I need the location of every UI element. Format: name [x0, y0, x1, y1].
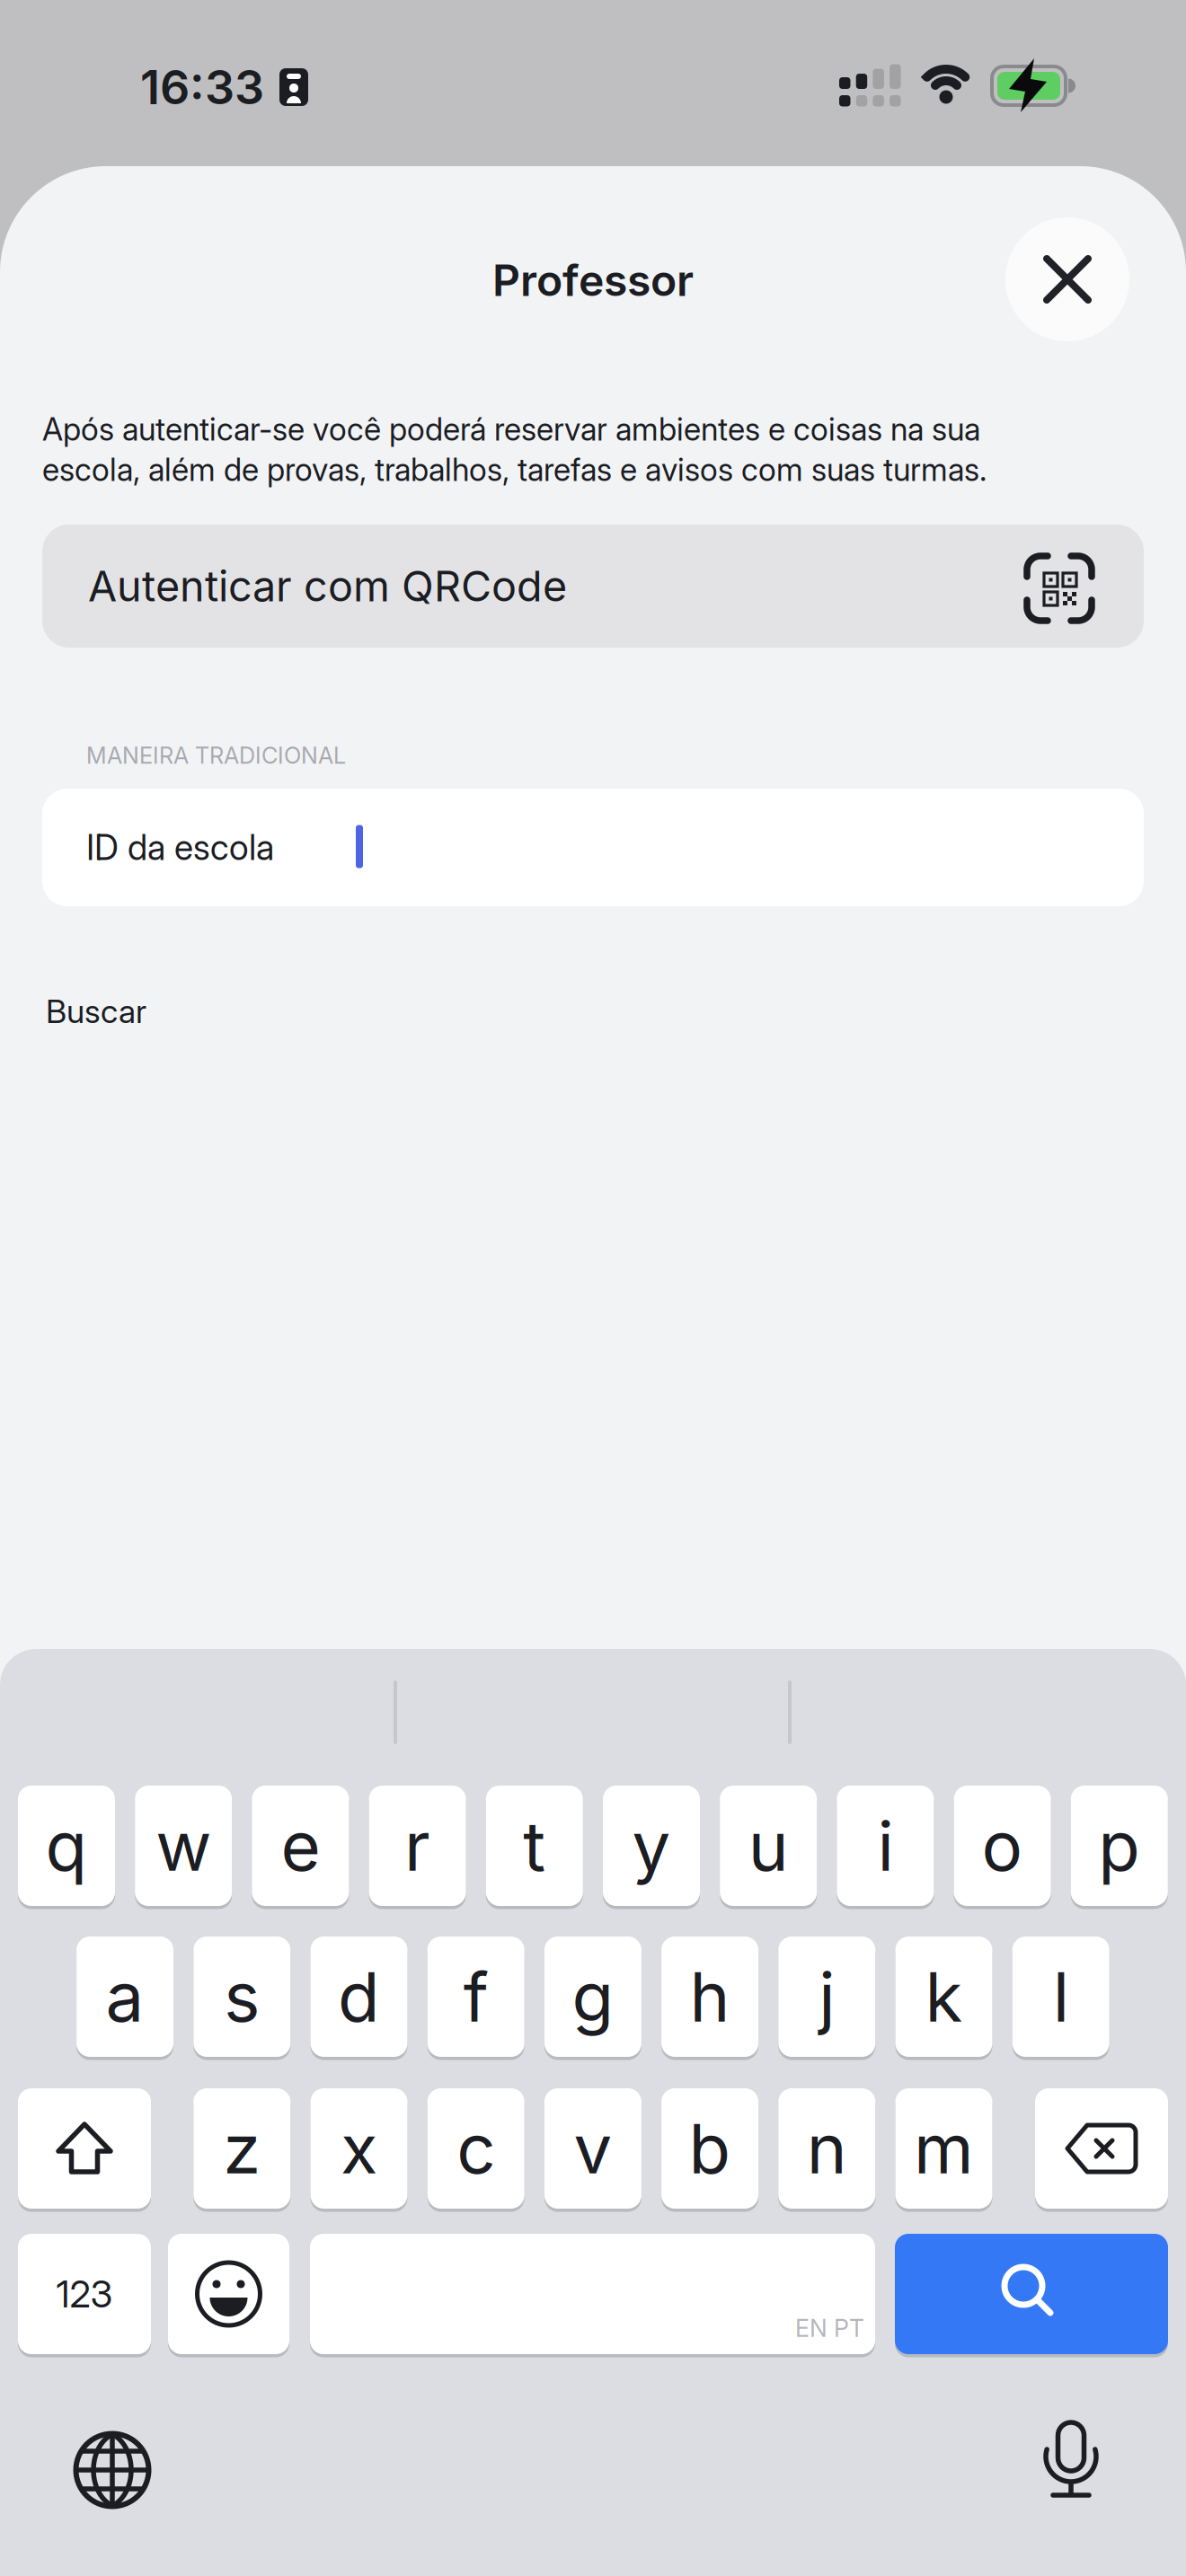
staticText: n — [807, 2108, 847, 2189]
button[interactable]: h — [661, 1936, 758, 2057]
button[interactable]: p — [1071, 1786, 1168, 1906]
button[interactable]: j — [778, 1936, 875, 2057]
button[interactable]: i — [837, 1786, 934, 1906]
button[interactable]: 123 — [18, 2234, 151, 2354]
button[interactable]: c — [427, 2088, 524, 2209]
button[interactable]: t — [486, 1786, 583, 1906]
button[interactable]: e — [252, 1786, 349, 1906]
staticText: q — [45, 1806, 88, 1886]
staticText: Autenticar com QRCode — [88, 561, 567, 611]
staticText: o — [982, 1806, 1023, 1886]
staticText: EN PT — [795, 2314, 864, 2342]
staticText: x — [341, 2108, 377, 2189]
button[interactable]: s — [193, 1936, 290, 2057]
button[interactable]: Próximo teclado — [67, 2425, 157, 2515]
staticText: p — [1098, 1806, 1140, 1886]
staticText: r — [404, 1806, 430, 1886]
staticText: v — [574, 2108, 612, 2189]
staticText: MANEIRA TRADICIONAL — [86, 742, 346, 769]
button[interactable]: q — [18, 1786, 115, 1906]
staticText: m — [914, 2108, 974, 2189]
button[interactable]: Espaço — [310, 2234, 875, 2354]
button[interactable]: x — [310, 2088, 407, 2209]
staticText: b — [689, 2108, 731, 2189]
button[interactable]: ID da escola — [42, 789, 1144, 906]
button[interactable]: m — [895, 2088, 992, 2209]
button[interactable]: k — [895, 1936, 992, 2057]
staticText: 123 — [56, 2272, 113, 2316]
button[interactable]: n — [778, 2088, 875, 2209]
staticText: a — [106, 1956, 144, 2037]
button[interactable]: Shift — [18, 2088, 151, 2209]
staticText: g — [572, 1956, 614, 2037]
button[interactable]: z — [193, 2088, 290, 2209]
staticText: Após autenticar-se você poderá reservar … — [42, 411, 980, 448]
button[interactable]: d — [310, 1936, 407, 2057]
staticText: j — [819, 1956, 835, 2037]
staticText: l — [1053, 1956, 1069, 2037]
button[interactable]: b — [661, 2088, 758, 2209]
staticText: z — [223, 2108, 261, 2189]
button[interactable]: o — [954, 1786, 1051, 1906]
button[interactable]: Buscar — [895, 2234, 1168, 2354]
button[interactable]: Fechar — [1005, 217, 1129, 341]
button[interactable]: a — [76, 1936, 173, 2057]
staticText: e — [281, 1806, 320, 1886]
button[interactable]: Delete — [1035, 2088, 1168, 2209]
staticText: h — [690, 1956, 730, 2037]
staticText: 16:33 — [140, 60, 264, 115]
staticText: escola, além de provas, trabalhos, taref… — [42, 451, 987, 488]
button[interactable]: y — [603, 1786, 700, 1906]
staticText: u — [748, 1806, 789, 1886]
button[interactable]: Ditado — [1026, 2421, 1116, 2510]
button[interactable]: f — [427, 1936, 524, 2057]
button[interactable]: Emoji — [168, 2234, 289, 2354]
staticText: y — [632, 1806, 671, 1886]
staticText: ID da escola — [86, 827, 274, 868]
button[interactable]: l — [1012, 1936, 1109, 2057]
button[interactable]: r — [369, 1786, 466, 1906]
staticText: Professor — [492, 255, 694, 306]
button[interactable]: Buscar — [46, 975, 405, 1047]
staticText: d — [338, 1956, 380, 2037]
staticText: k — [925, 1956, 963, 2037]
staticText: w — [156, 1806, 211, 1886]
staticText: c — [457, 2108, 495, 2189]
staticText: f — [463, 1956, 489, 2037]
button[interactable]: g — [544, 1936, 641, 2057]
button[interactable]: w — [135, 1786, 232, 1906]
staticText: i — [877, 1806, 893, 1886]
staticText: s — [224, 1956, 260, 2037]
button[interactable]: v — [544, 2088, 641, 2209]
staticText: t — [523, 1806, 546, 1886]
button[interactable]: u — [720, 1786, 817, 1906]
button[interactable]: Autenticar com QRCode — [42, 525, 1144, 648]
staticText: Buscar — [46, 992, 146, 1030]
